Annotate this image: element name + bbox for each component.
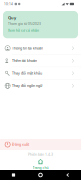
button[interactable]: Recent apps bbox=[0, 170, 27, 180]
staticText: Tham gia từ 05/2023 bbox=[8, 22, 41, 26]
button[interactable]: Thông tin tài khoản bbox=[0, 42, 81, 54]
button[interactable]: Home bbox=[27, 170, 54, 180]
button[interactable]: Thay đổi mật khẩu bbox=[0, 67, 81, 79]
staticText: Thay đổi mật khẩu bbox=[12, 71, 42, 76]
staticText: Phiên bản 1.4.3 bbox=[28, 152, 53, 157]
staticText: Quy bbox=[8, 15, 16, 20]
staticText: Thay đổi ngôn ngữ bbox=[12, 83, 42, 88]
staticText: Thông tin tài khoản bbox=[12, 46, 43, 51]
button[interactable]: Trang chủ bbox=[0, 159, 81, 170]
staticText: Đăng xuất bbox=[12, 142, 29, 147]
button[interactable]: Back bbox=[54, 170, 81, 180]
staticText: Trang chủ bbox=[32, 165, 48, 170]
button[interactable]: Thay đổi ngôn ngữ bbox=[0, 80, 81, 92]
staticText: Xem hồ sơ cá nhân bbox=[8, 28, 39, 33]
button[interactable]: Quy bbox=[3, 11, 78, 38]
button[interactable]: Thêm tài khoản bbox=[0, 55, 81, 67]
staticText: 10:14 bbox=[4, 2, 13, 6]
button[interactable]: Đăng xuất bbox=[0, 139, 81, 150]
staticText: Thêm tài khoản bbox=[12, 58, 37, 63]
